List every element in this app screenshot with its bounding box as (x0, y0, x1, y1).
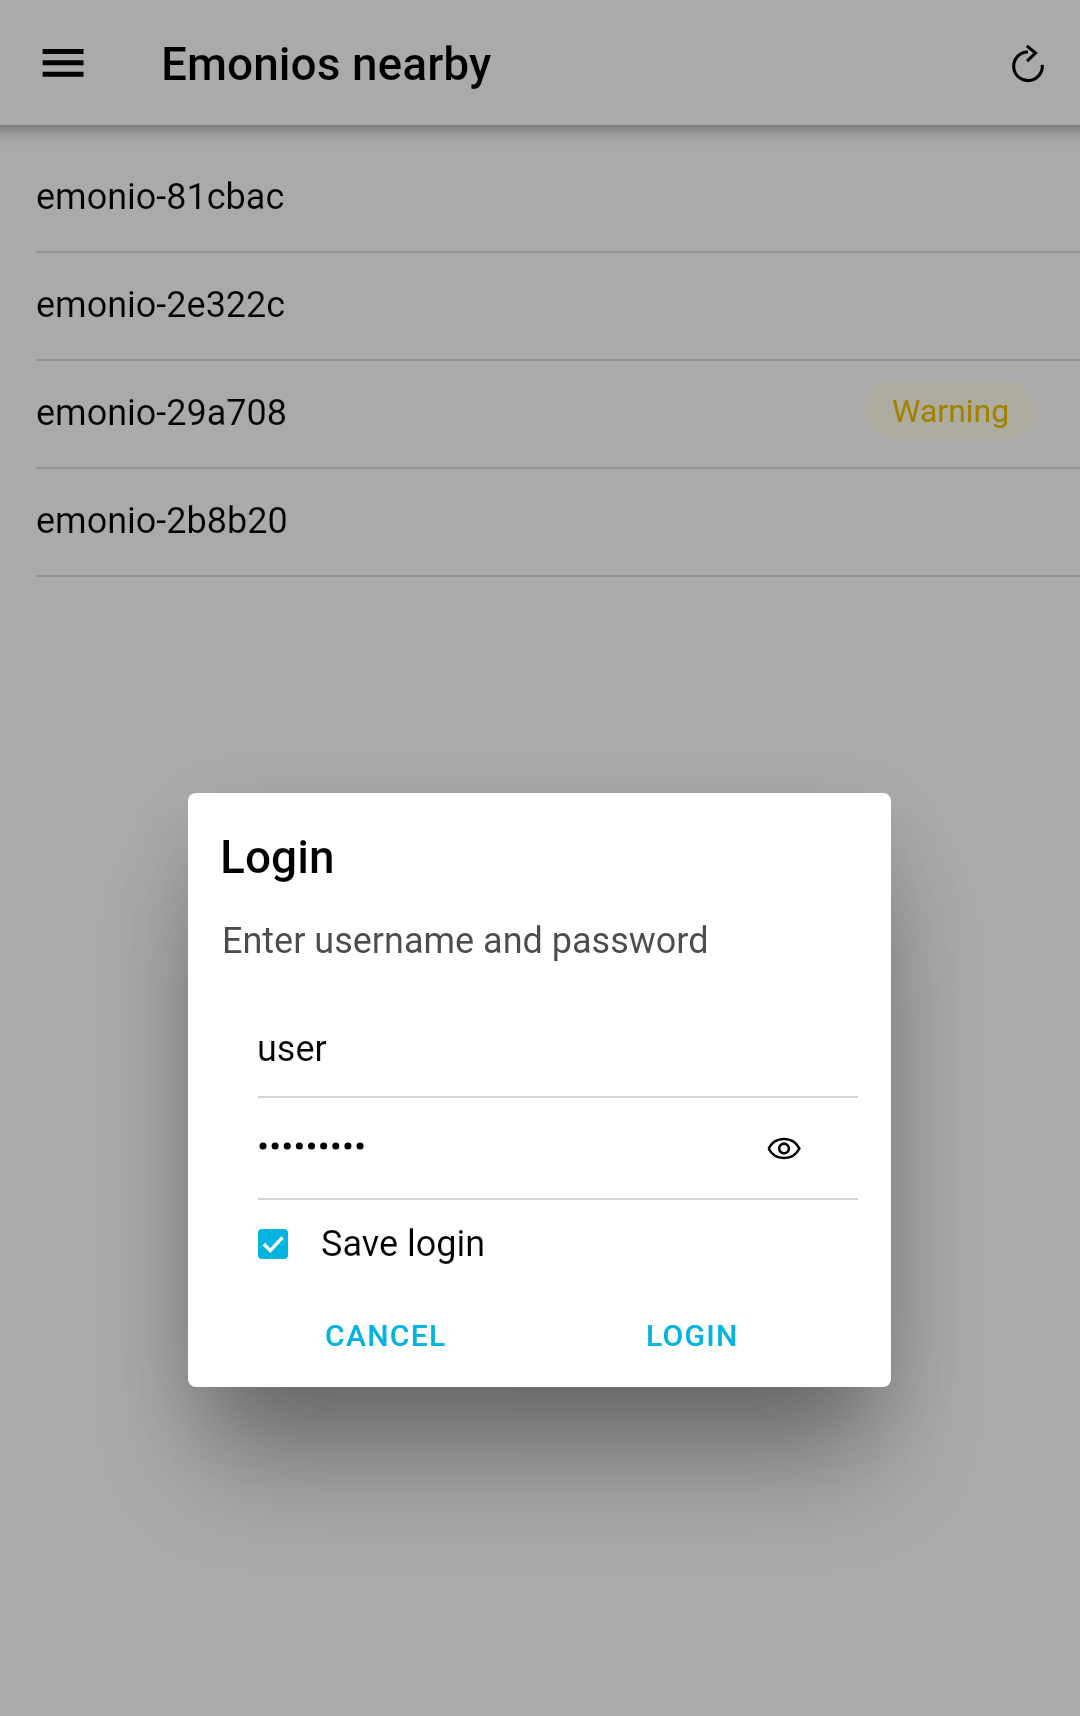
staticText: LOGIN (646, 1318, 739, 1353)
staticText: Warning (892, 392, 1010, 430)
button[interactable]: CANCEL (303, 1299, 468, 1371)
staticText: user (257, 1028, 327, 1070)
staticText: Enter username and password (222, 920, 709, 962)
staticText: Save login (321, 1223, 486, 1265)
button[interactable]: Refresh (986, 24, 1070, 108)
button[interactable]: LOGIN (625, 1299, 760, 1371)
staticText: emonio-2e322c (36, 284, 286, 326)
button[interactable]: Save login (236, 1211, 486, 1277)
button[interactable]: Open navigation menu (21, 24, 105, 108)
staticText: Login (220, 830, 335, 884)
button[interactable]: emonio-81cbac (0, 145, 1080, 253)
button[interactable]: emonio-2b8b20 (0, 469, 1080, 577)
staticText: emonio-29a708 (36, 392, 288, 434)
button[interactable]: Show password (751, 1115, 817, 1181)
button[interactable]: Warning (866, 381, 1035, 440)
staticText: Emonios nearby (161, 37, 492, 91)
button[interactable]: emonio-29a708 (0, 361, 1080, 469)
staticText: CANCEL (325, 1318, 447, 1353)
staticText: emonio-2b8b20 (36, 500, 288, 542)
staticText: emonio-81cbac (36, 176, 285, 218)
button[interactable]: emonio-2e322c (0, 253, 1080, 361)
